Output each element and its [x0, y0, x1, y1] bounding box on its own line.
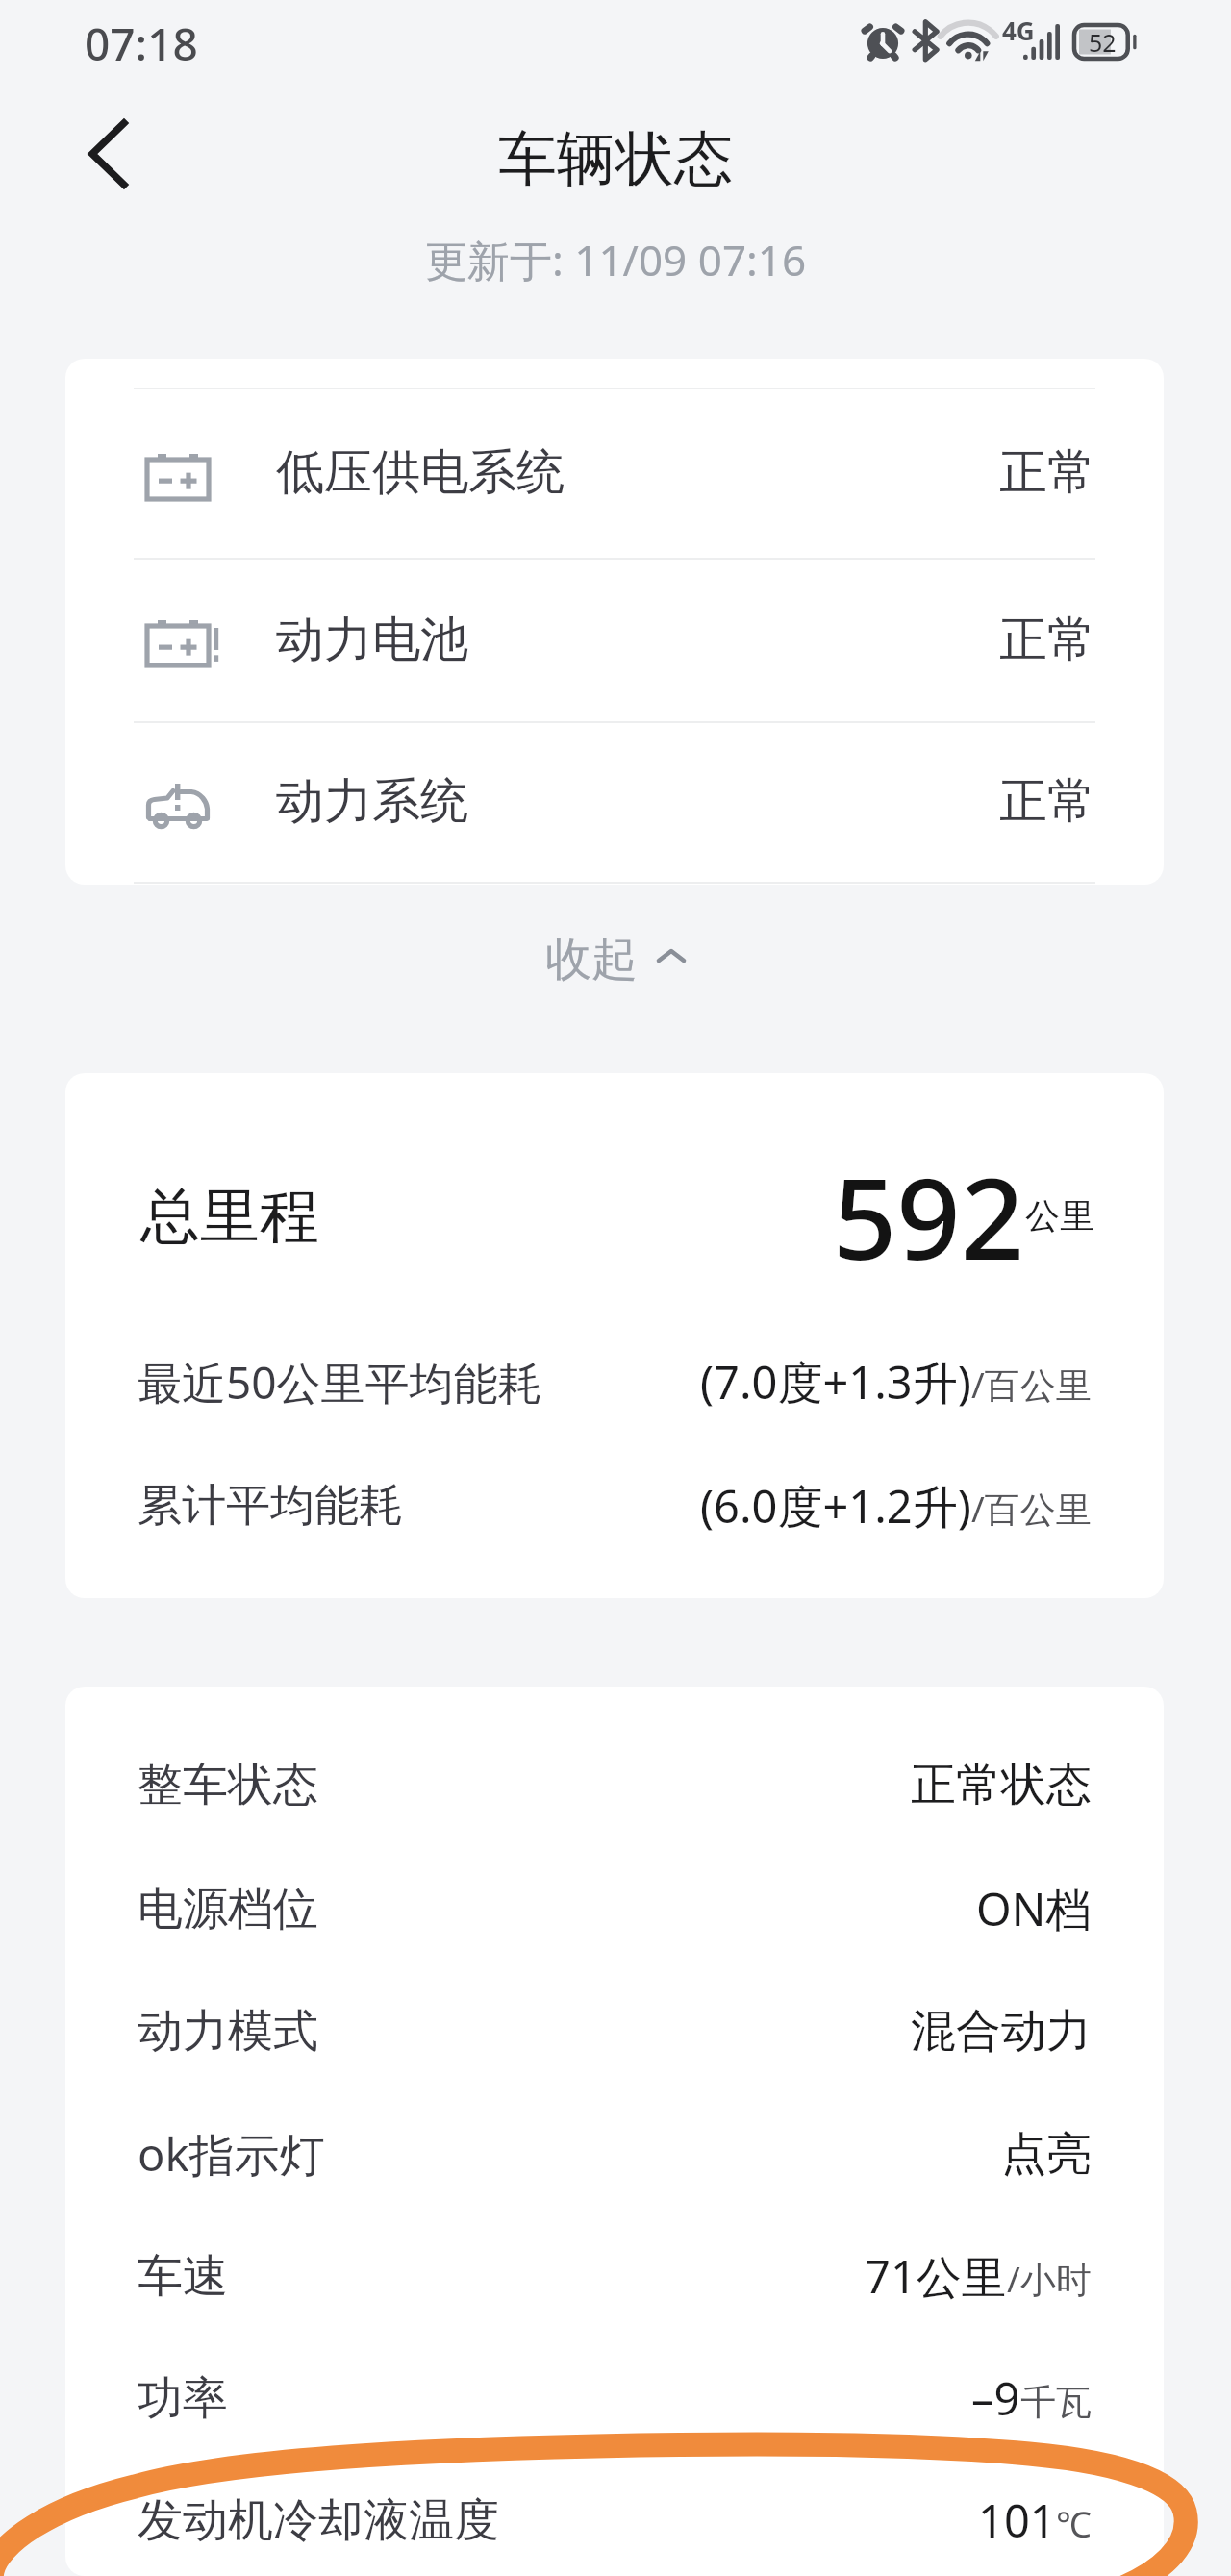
- staticText: 电源档位: [138, 1881, 318, 1938]
- staticText: ok指示灯: [138, 2123, 325, 2185]
- button[interactable]: Back: [60, 108, 152, 200]
- button[interactable]: 整车状态: [65, 1727, 1164, 1842]
- staticText: (7.0度+1.3升): [700, 1351, 971, 1413]
- staticText: 功率: [138, 2370, 228, 2427]
- staticText: 累计平均能耗: [138, 1478, 403, 1534]
- staticText: /百公里: [971, 1360, 1092, 1409]
- staticText: 车辆状态: [498, 122, 733, 196]
- staticText: 正常: [999, 610, 1095, 670]
- staticText: ℃: [1056, 2499, 1092, 2547]
- button[interactable]: 最近50公里平均能耗: [65, 1334, 1164, 1430]
- button[interactable]: 发动机冷却液温度: [65, 2463, 1164, 2576]
- staticText: 车速: [138, 2248, 228, 2305]
- staticText: 混合动力: [911, 2003, 1092, 2060]
- staticText: 点亮: [1001, 2126, 1092, 2183]
- staticText: /小时: [1007, 2254, 1092, 2303]
- button[interactable]: 电源档位: [65, 1851, 1164, 1966]
- button[interactable]: ok指示灯: [65, 2096, 1164, 2212]
- staticText: ON档: [976, 1878, 1092, 1939]
- button[interactable]: 车速: [65, 2218, 1164, 2334]
- staticText: 52: [1089, 26, 1117, 59]
- staticText: 71公里: [865, 2245, 1007, 2307]
- staticText: 正常状态: [911, 1757, 1092, 1813]
- staticText: (6.0度+1.2升): [700, 1475, 971, 1537]
- staticText: 总里程: [140, 1179, 319, 1254]
- staticText: 更新于: 11/09 07:16: [425, 231, 807, 288]
- staticText: 正常: [999, 442, 1095, 503]
- staticText: 正常: [999, 771, 1095, 832]
- staticText: –9: [971, 2367, 1020, 2429]
- staticText: 动力电池: [276, 610, 468, 670]
- staticText: 公里: [1025, 1194, 1094, 1238]
- button[interactable]: 低压供电系统: [65, 388, 1164, 558]
- button[interactable]: 功率: [65, 2340, 1164, 2456]
- staticText: 千瓦: [1020, 2380, 1092, 2425]
- button[interactable]: 动力系统: [65, 721, 1164, 882]
- staticText: 4G: [1002, 13, 1035, 47]
- staticText: 动力模式: [138, 2003, 318, 2060]
- staticText: 动力系统: [276, 771, 468, 832]
- staticText: 整车状态: [138, 1757, 318, 1813]
- staticText: 101: [978, 2489, 1056, 2551]
- staticText: /百公里: [971, 1484, 1092, 1533]
- staticText: 592: [833, 1140, 1025, 1292]
- staticText: 收起: [545, 931, 638, 988]
- staticText: 07:18: [85, 13, 198, 74]
- staticText: 低压供电系统: [276, 442, 565, 503]
- button[interactable]: 动力电池: [65, 558, 1164, 721]
- button[interactable]: 动力模式: [65, 1973, 1164, 2088]
- staticText: 发动机冷却液温度: [138, 2492, 499, 2549]
- button[interactable]: 累计平均能耗: [65, 1458, 1164, 1554]
- staticText: 最近50公里平均能耗: [138, 1352, 542, 1413]
- button[interactable]: 收起: [0, 915, 1231, 1004]
